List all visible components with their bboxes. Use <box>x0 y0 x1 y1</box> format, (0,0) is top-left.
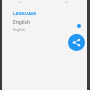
staticText: English <box>13 19 31 26</box>
staticText: LANGUAGE <box>13 11 37 16</box>
button[interactable]: Share <box>68 34 85 51</box>
staticText: English <box>13 27 25 32</box>
other: Selected <box>77 24 81 28</box>
button[interactable]: English <box>2 19 87 32</box>
